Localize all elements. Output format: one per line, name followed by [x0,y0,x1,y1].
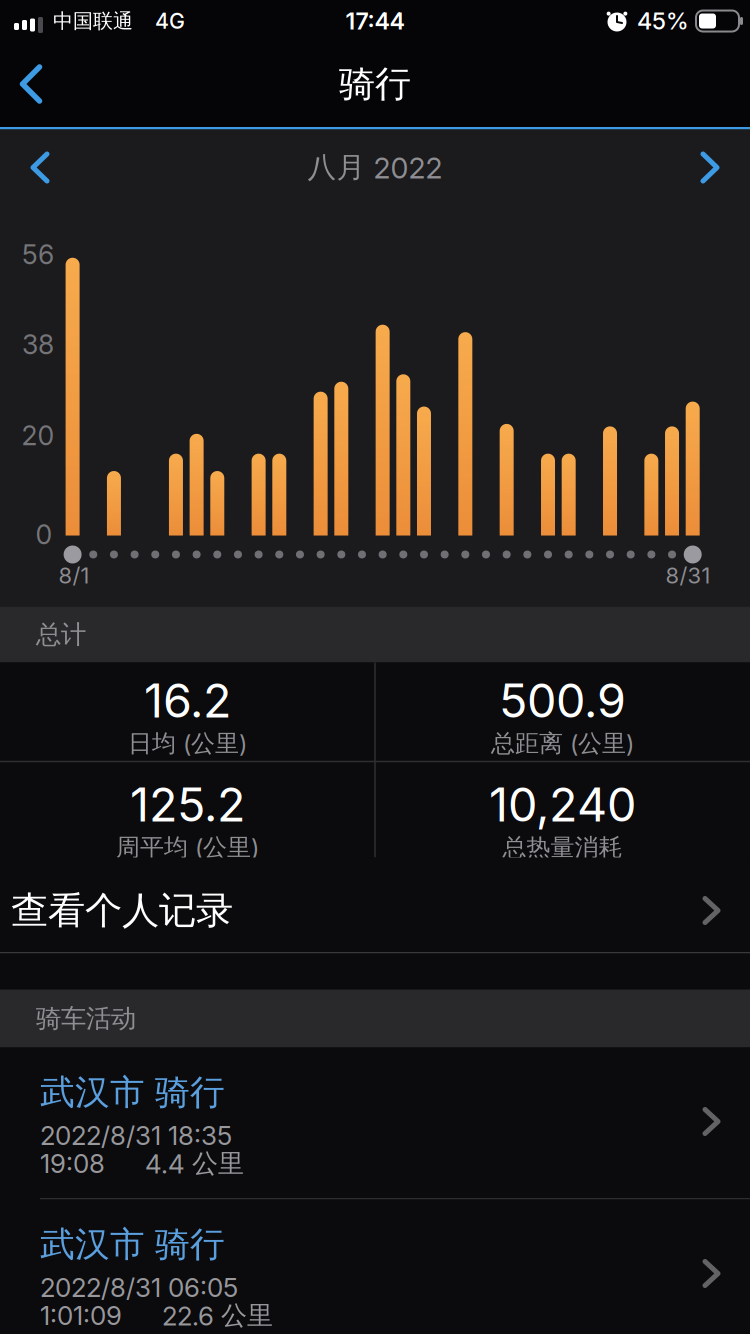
staticText: 骑车活动 [36,1003,136,1034]
staticText: 4G [155,8,185,34]
staticText: 2022/8/31 18:35 [40,1120,232,1151]
staticText: 8/1 [58,562,89,589]
button[interactable]: 上个月 [17,138,63,197]
staticText: 10,240 [489,776,636,833]
staticText: 500.9 [499,672,626,729]
staticText: 125.2 [130,776,245,833]
staticText: 56 [22,238,54,271]
staticText: 0 [35,518,52,551]
staticText: 19:08 [40,1148,105,1179]
staticText: 16.2 [144,672,231,729]
staticText: 总热量消耗 [502,832,622,863]
button[interactable]: 下个月 [687,138,733,197]
staticText: 17:44 [345,7,404,35]
staticText: 八月 2022 [307,149,442,185]
staticText: 1:01:09 [40,1300,122,1331]
staticText: 日均 (公里) [128,728,247,759]
button[interactable]: 查看个人记录 [0,857,750,953]
staticText: 8/31 [665,562,710,589]
button[interactable]: 武汉市 骑行 [0,1047,750,1199]
staticText: 20 [21,419,54,452]
staticText: 2022/8/31 06:05 [40,1272,238,1303]
staticText: 周平均 (公里) [116,832,259,863]
staticText: 武汉市 骑行 [40,1071,225,1114]
staticText: 38 [22,328,54,361]
staticText: 22.6 公里 [162,1299,273,1332]
staticText: 武汉市 骑行 [40,1223,225,1266]
staticText: 45% [637,7,689,35]
staticText: 骑行 [339,62,411,106]
staticText: 4.4 公里 [145,1147,244,1180]
staticText: 总计 [36,619,86,650]
button[interactable]: 武汉市 骑行 [0,1199,750,1334]
staticText: 中国联通 [53,8,133,34]
button[interactable]: 返回 [0,51,65,117]
staticText: 查看个人记录 [11,888,233,933]
staticText: 总距离 (公里) [491,728,634,759]
